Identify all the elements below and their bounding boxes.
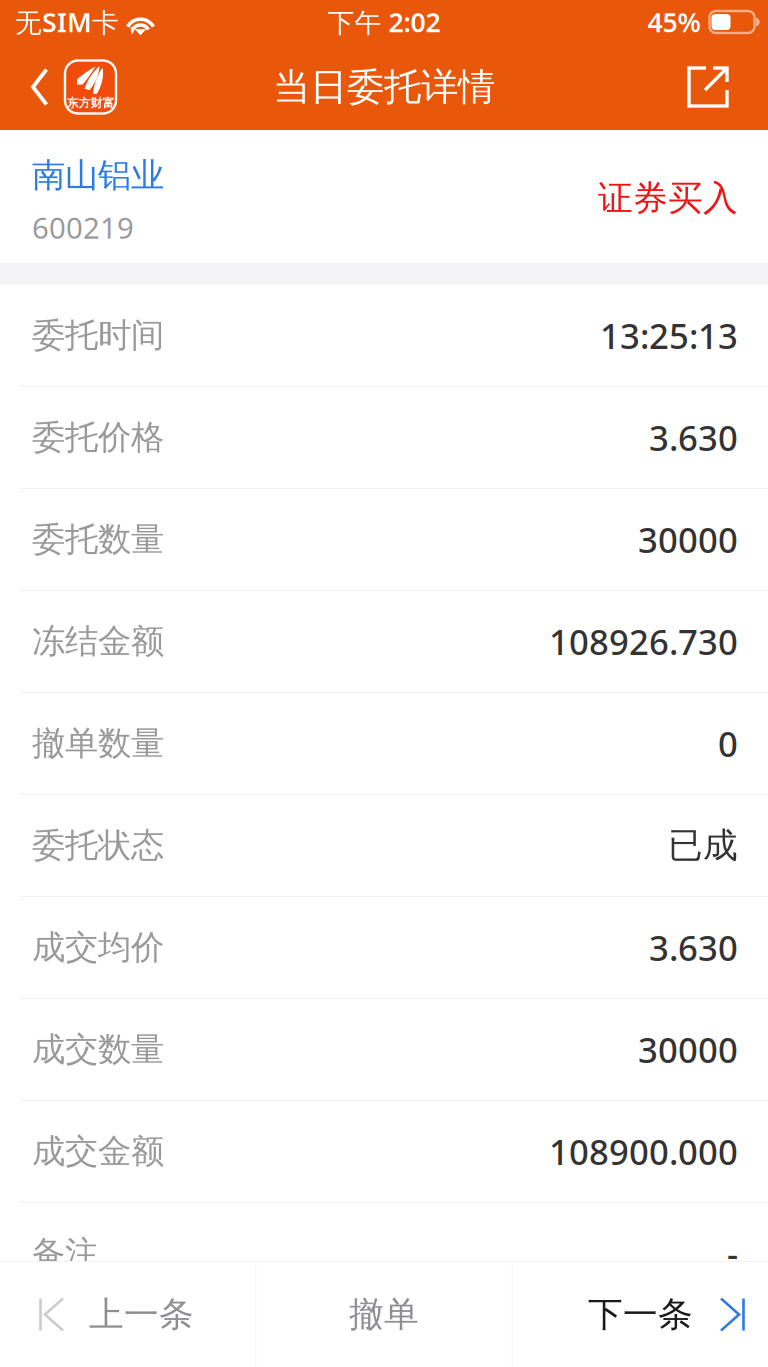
staticText: 无SIM卡 (15, 4, 119, 40)
staticText: 600219 (32, 208, 134, 247)
staticText: 冻结金额 (32, 621, 164, 662)
staticText: 南山铝业 (32, 155, 164, 196)
staticText: 108900.000 (549, 1128, 738, 1174)
button[interactable]: 返回 (0, 44, 65, 130)
staticText: 45% (647, 4, 700, 40)
staticText: 下午 2:02 (327, 4, 440, 40)
staticText: 13:25:13 (600, 312, 738, 358)
staticText: 撤单 (349, 1293, 419, 1336)
button[interactable]: 上一条 (0, 1262, 255, 1367)
button[interactable]: 撤单 (256, 1262, 512, 1367)
staticText: 证券买入 (598, 177, 738, 220)
staticText: 0 (718, 720, 738, 766)
staticText: 委托时间 (32, 315, 164, 356)
button[interactable]: 分享 (667, 44, 768, 130)
staticText: 108926.730 (549, 618, 738, 664)
staticText: - (727, 1230, 738, 1276)
staticText: 成交数量 (32, 1029, 164, 1070)
staticText: 成交金额 (32, 1131, 164, 1172)
staticText: 上一条 (89, 1293, 194, 1336)
staticText: 成交均价 (32, 927, 164, 968)
staticText: 东方财富 (66, 96, 114, 110)
staticText: 备注 (32, 1233, 98, 1274)
staticText: 3.630 (649, 924, 738, 970)
staticText: 已成 (668, 824, 738, 867)
button[interactable]: 东方财富 (65, 44, 116, 130)
staticText: 委托状态 (32, 825, 164, 866)
staticText: 3.630 (649, 414, 738, 460)
staticText: 委托数量 (32, 519, 164, 560)
staticText: 当日委托详情 (273, 64, 495, 110)
button[interactable]: 下一条 (513, 1262, 768, 1367)
staticText: 撤单数量 (32, 723, 164, 764)
staticText: 下一条 (588, 1293, 693, 1336)
staticText: 30000 (638, 516, 738, 562)
staticText: 委托价格 (32, 417, 164, 458)
staticText: 30000 (638, 1026, 738, 1072)
